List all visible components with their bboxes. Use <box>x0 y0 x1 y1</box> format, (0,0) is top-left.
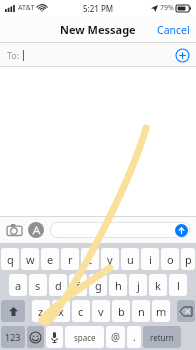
staticText: z <box>38 304 44 319</box>
staticText: t <box>88 252 92 267</box>
staticText: n <box>138 304 145 319</box>
button[interactable]: 123 <box>1 326 25 348</box>
staticText: 79% <box>160 3 174 13</box>
button[interactable]: e <box>41 248 59 270</box>
staticText: g <box>95 278 102 293</box>
button[interactable]: k <box>149 274 167 296</box>
staticText: y <box>107 252 113 267</box>
staticText: f <box>76 278 80 293</box>
button[interactable]: b <box>112 300 130 322</box>
button[interactable]: l <box>169 274 187 296</box>
button[interactable]: y <box>101 248 119 270</box>
button[interactable]: n <box>132 300 150 322</box>
staticText: @ <box>111 330 120 344</box>
button[interactable]: . <box>127 326 141 348</box>
staticText: x <box>58 304 64 319</box>
staticText: 123 <box>5 331 21 343</box>
staticText: space <box>74 332 96 343</box>
button[interactable]: h <box>109 274 127 296</box>
button[interactable]: @ <box>106 326 125 348</box>
staticText: q <box>7 252 14 267</box>
button[interactable]: c <box>72 300 90 322</box>
staticText: w <box>26 252 35 267</box>
button[interactable]: Apps <box>28 222 44 238</box>
staticText: e <box>47 252 54 267</box>
button[interactable]: a <box>9 274 27 296</box>
button[interactable]: d <box>49 274 67 296</box>
button[interactable]: p <box>181 248 195 270</box>
staticText: v <box>98 304 104 319</box>
staticText: i <box>149 252 152 267</box>
staticText: Cancel <box>157 23 190 37</box>
staticText: d <box>55 278 62 293</box>
button[interactable]: j <box>129 274 147 296</box>
button[interactable]: o <box>161 248 179 270</box>
button[interactable]: Send <box>175 224 188 237</box>
staticText: c <box>78 304 84 319</box>
button[interactable]: m <box>152 300 170 322</box>
button[interactable]: r <box>61 248 79 270</box>
staticText: l <box>177 278 180 293</box>
button[interactable]: u <box>121 248 139 270</box>
staticText: r <box>68 252 73 267</box>
button[interactable]: Backspace <box>177 300 195 322</box>
staticText: To: <box>7 49 20 61</box>
staticText: 5:21 PM <box>83 3 114 14</box>
button[interactable]: g <box>89 274 107 296</box>
staticText: m <box>156 304 167 319</box>
staticText: k <box>155 278 161 293</box>
button[interactable]: f <box>69 274 87 296</box>
button[interactable]: Emoji <box>27 326 44 348</box>
button[interactable]: return <box>143 326 181 348</box>
button[interactable]: q <box>1 248 19 270</box>
button[interactable]: v <box>92 300 110 322</box>
button[interactable]: x <box>52 300 70 322</box>
staticText: New Message <box>60 22 136 37</box>
staticText: j <box>137 278 140 293</box>
staticText: return <box>150 332 174 343</box>
staticText: h <box>115 278 122 293</box>
button[interactable]: z <box>32 300 50 322</box>
button[interactable]: i <box>141 248 159 270</box>
staticText: AT&T <box>18 3 35 13</box>
staticText: s <box>35 278 41 293</box>
button[interactable]: Camera <box>6 221 23 238</box>
button[interactable]: space <box>65 326 104 348</box>
staticText: b <box>118 304 125 319</box>
button[interactable]: Cancel <box>157 23 190 37</box>
button[interactable]: w <box>21 248 39 270</box>
staticText: p <box>185 252 192 267</box>
button[interactable]: t <box>81 248 99 270</box>
button[interactable]: Send <box>50 222 190 238</box>
staticText: u <box>127 252 134 267</box>
staticText: o <box>167 252 174 267</box>
button[interactable]: Dictate <box>46 326 63 348</box>
button[interactable]: s <box>29 274 47 296</box>
button[interactable]: Shift <box>1 300 25 322</box>
staticText: a <box>15 278 22 293</box>
button[interactable]: Add contact <box>175 48 190 63</box>
staticText: . <box>133 330 136 344</box>
